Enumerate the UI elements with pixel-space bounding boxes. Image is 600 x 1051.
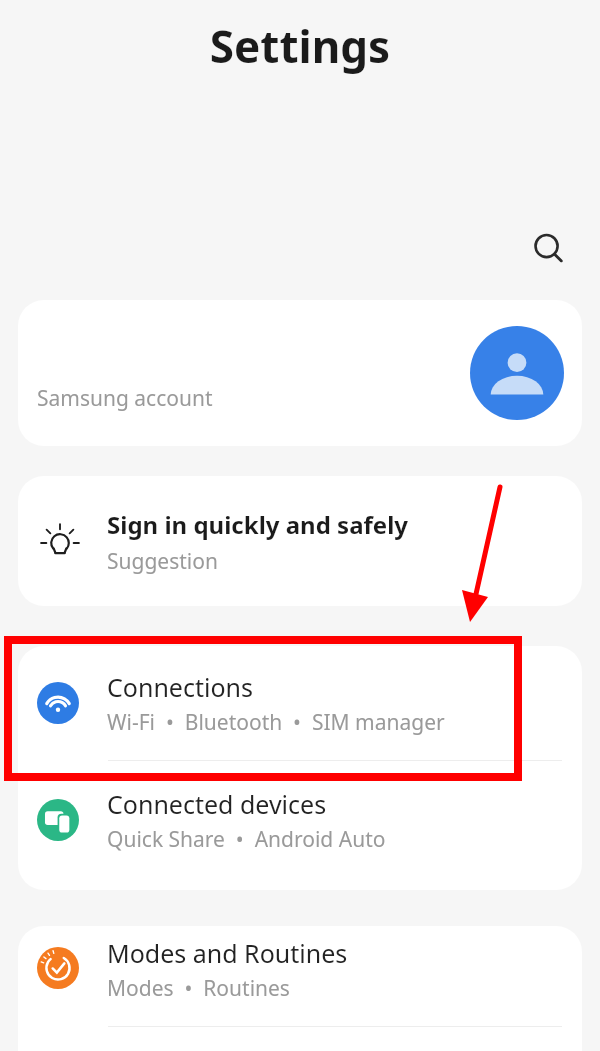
button[interactable]: Modes and Routines bbox=[18, 926, 582, 1026]
button[interactable]: Connections bbox=[18, 646, 582, 760]
button[interactable]: Connected devices bbox=[18, 761, 582, 871]
staticText: Connected devices bbox=[107, 787, 327, 821]
button[interactable]: Sign in quickly and safely bbox=[18, 476, 582, 606]
staticText: Wi-Fi • Bluetooth • SIM manager bbox=[107, 708, 445, 737]
staticText: Modes • Routines bbox=[107, 974, 290, 1003]
button[interactable]: Search bbox=[524, 224, 572, 272]
staticText: Settings bbox=[0, 16, 600, 76]
staticText: Quick Share • Android Auto bbox=[107, 825, 386, 854]
staticText: Sign in quickly and safely bbox=[107, 508, 409, 541]
staticText: Modes and Routines bbox=[107, 936, 348, 970]
staticText: Connections bbox=[107, 670, 253, 704]
button[interactable]: Samsung account bbox=[18, 300, 582, 446]
staticText: Suggestion bbox=[107, 547, 218, 576]
staticText: Samsung account bbox=[37, 384, 213, 413]
